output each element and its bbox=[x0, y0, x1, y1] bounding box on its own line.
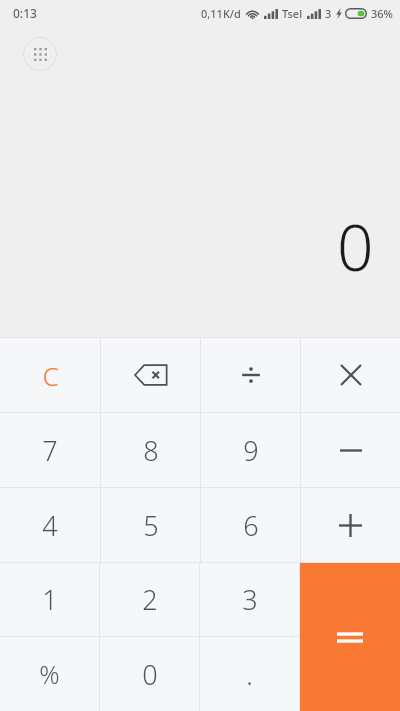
staticText: 3 bbox=[325, 6, 332, 21]
button[interactable]: 1 bbox=[0, 563, 99, 636]
staticText: 0 bbox=[142, 656, 158, 693]
button[interactable]: 4 bbox=[0, 488, 100, 562]
staticText: % bbox=[39, 657, 60, 691]
staticText: 0 bbox=[337, 203, 374, 290]
button[interactable]: Plus bbox=[301, 488, 400, 562]
staticText: Tsel bbox=[282, 6, 303, 21]
button[interactable]: Equals bbox=[300, 563, 400, 711]
button[interactable]: 5 bbox=[101, 488, 200, 562]
button[interactable]: 0 bbox=[100, 637, 199, 711]
button[interactable]: Divide bbox=[201, 338, 300, 412]
button[interactable]: . bbox=[200, 637, 299, 711]
button[interactable]: % bbox=[0, 637, 99, 711]
staticText: 5 bbox=[143, 507, 159, 544]
button[interactable]: 8 bbox=[101, 413, 200, 487]
button[interactable]: Minus bbox=[301, 413, 400, 487]
staticText: 6 bbox=[243, 507, 259, 544]
button[interactable]: 7 bbox=[0, 413, 100, 487]
staticText: 4 bbox=[42, 507, 58, 544]
staticText: 7 bbox=[42, 432, 58, 469]
staticText: 3 bbox=[242, 581, 258, 618]
staticText: 36% bbox=[371, 6, 393, 21]
staticText: 8 bbox=[143, 432, 159, 469]
staticText: 2 bbox=[142, 581, 158, 618]
button[interactable]: Multiply bbox=[301, 338, 400, 412]
staticText: C bbox=[42, 358, 59, 393]
button[interactable]: Menu bbox=[23, 37, 57, 71]
staticText: 9 bbox=[243, 432, 259, 469]
button[interactable]: 9 bbox=[201, 413, 300, 487]
staticText: 1 bbox=[42, 581, 58, 618]
staticText: 0,11K/d bbox=[201, 6, 241, 21]
button[interactable]: 6 bbox=[201, 488, 300, 562]
button[interactable]: 2 bbox=[100, 563, 199, 636]
button[interactable]: 3 bbox=[200, 563, 299, 636]
button[interactable]: Clear bbox=[0, 338, 100, 412]
staticText: 0:13 bbox=[13, 5, 37, 21]
staticText: . bbox=[246, 656, 253, 693]
button[interactable]: Backspace bbox=[101, 338, 200, 412]
